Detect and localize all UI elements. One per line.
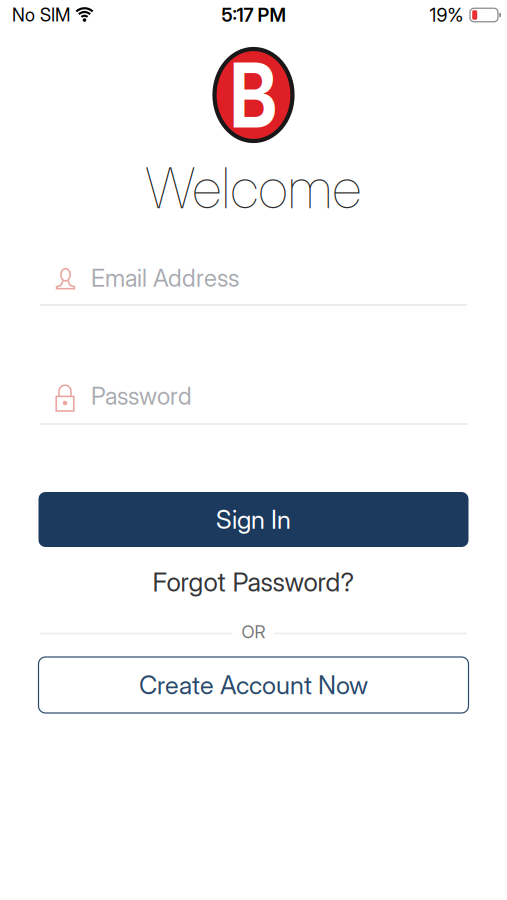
staticText: B xyxy=(224,41,282,149)
staticText: Sign In xyxy=(216,504,291,535)
staticText: Forgot Password? xyxy=(152,566,354,598)
button[interactable]: Email Address xyxy=(40,263,467,306)
button[interactable]: Create Account Now xyxy=(38,657,468,713)
button[interactable]: Sign In xyxy=(38,492,468,547)
staticText: 19% xyxy=(429,4,463,26)
button[interactable]: Password xyxy=(40,381,467,425)
staticText: Password xyxy=(91,381,192,410)
staticText: Welcome xyxy=(145,154,361,222)
staticText: Create Account Now xyxy=(139,670,368,700)
staticText: OR xyxy=(241,621,265,642)
staticText: 5:17 PM xyxy=(221,4,285,26)
staticText: No SIM xyxy=(12,4,70,26)
button[interactable]: Forgot Password? xyxy=(152,566,354,598)
staticText: Email Address xyxy=(91,263,239,292)
